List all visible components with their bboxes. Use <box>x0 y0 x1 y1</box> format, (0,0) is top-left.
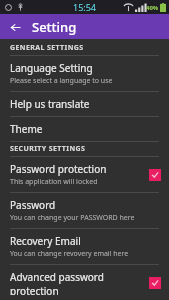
staticText: Password protection <box>10 162 107 176</box>
staticText: Advanced password protection <box>10 270 145 295</box>
staticText: This application will locked <box>10 177 98 187</box>
button[interactable]: Language Setting <box>0 56 169 91</box>
staticText: Theme <box>10 122 43 136</box>
button[interactable]: Password protection <box>0 157 169 192</box>
staticText: 40% <box>146 4 159 12</box>
staticText: Help us translate <box>10 97 90 111</box>
staticText: You can change your PASSWORD here <box>10 213 135 223</box>
staticText: Recovery Email <box>10 234 81 248</box>
button[interactable]: Theme <box>0 117 169 141</box>
button[interactable]: Recovery Email <box>0 229 169 264</box>
staticText: Password <box>10 198 56 212</box>
staticText: You can change revovery email here <box>10 249 129 259</box>
staticText: Please select a language to use <box>10 76 113 86</box>
staticText: Language Setting <box>10 61 93 75</box>
staticText: SECURITY SETTINGS <box>10 144 86 154</box>
button[interactable]: Help us translate <box>0 92 169 116</box>
staticText: Setting <box>32 18 77 36</box>
button[interactable]: Back <box>5 17 25 37</box>
staticText: 15:54 <box>73 1 97 13</box>
button[interactable]: Toggle <box>149 277 161 289</box>
button[interactable]: Password <box>0 193 169 228</box>
button[interactable]: Advanced password protection <box>0 265 169 300</box>
staticText: GENERAL SETTINGS <box>10 43 84 53</box>
button[interactable]: Toggle <box>149 169 161 181</box>
